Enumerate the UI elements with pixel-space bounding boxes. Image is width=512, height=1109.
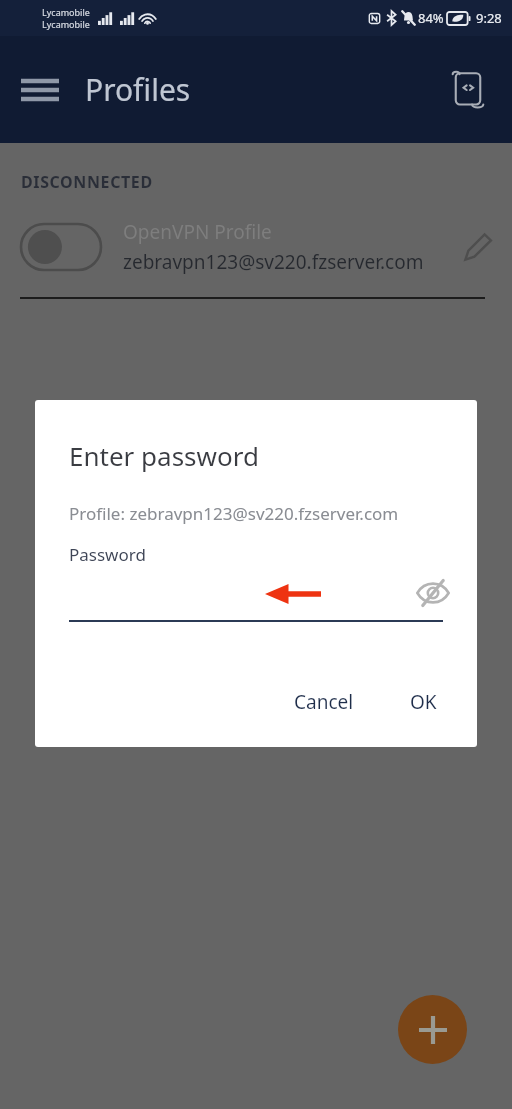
button[interactable]: OpenVPN Profile: [0, 219, 512, 275]
staticText: Lycamobile: [42, 18, 90, 30]
button[interactable]: Add profile: [398, 995, 467, 1064]
staticText: OK: [410, 689, 437, 715]
button[interactable]: View log: [440, 62, 496, 118]
button[interactable]: Open navigation menu: [9, 59, 71, 121]
button[interactable]: Edit profile: [450, 219, 506, 275]
staticText: Profiles: [85, 69, 191, 110]
staticText: Enter password: [69, 438, 259, 473]
staticText: zebravpn123@sv220.fzserver.com: [123, 249, 424, 275]
staticText: Profile: zebravpn123@sv220.fzserver.com: [69, 502, 399, 525]
staticText: Cancel: [294, 689, 354, 715]
button[interactable]: Toggle password visibility: [411, 571, 455, 615]
button[interactable]: Cancel: [278, 679, 370, 725]
staticText: DISCONNECTED: [21, 171, 153, 193]
staticText: 9:28: [476, 9, 502, 27]
staticText: OpenVPN Profile: [123, 219, 272, 245]
staticText: 84%: [418, 9, 444, 27]
staticText: Lycamobile: [42, 6, 90, 18]
staticText: Password: [69, 543, 146, 566]
button[interactable]: OK: [394, 679, 453, 725]
